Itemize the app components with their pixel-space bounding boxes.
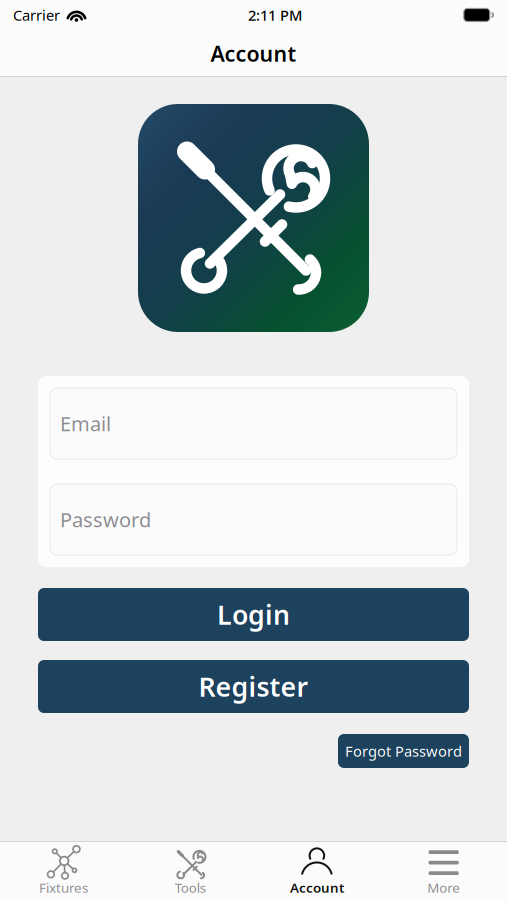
staticText: Register (198, 669, 308, 704)
staticText: Carrier (13, 5, 60, 25)
button[interactable]: Login (38, 588, 469, 641)
staticText: Account (210, 39, 296, 68)
staticText: Tools (175, 879, 206, 896)
button[interactable]: Tools (127, 841, 254, 900)
staticText: Forgot Password (345, 741, 462, 761)
staticText: Password (60, 506, 151, 533)
button[interactable]: More (380, 841, 507, 900)
button[interactable]: Password (50, 484, 457, 555)
button[interactable]: Email (50, 388, 457, 459)
staticText: Account (290, 879, 344, 896)
button[interactable]: Account (253, 841, 380, 900)
staticText: Email (60, 410, 111, 437)
staticText: More (427, 879, 460, 896)
button[interactable]: Register (38, 660, 469, 713)
button[interactable]: Forgot Password (338, 734, 469, 768)
button[interactable]: Fixtures (0, 841, 127, 900)
staticText: Login (217, 597, 290, 632)
staticText: Fixtures (39, 879, 88, 896)
staticText: 2:11 PM (248, 5, 302, 25)
